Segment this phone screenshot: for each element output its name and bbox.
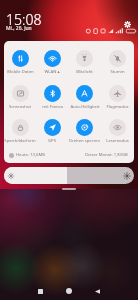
button[interactable]: WLAN ▴ <box>36 46 68 76</box>
staticText: GPS <box>48 138 56 144</box>
staticText: Dieser Monat: 1,83GB <box>85 152 128 158</box>
button[interactable]: Screenshot <box>4 81 36 111</box>
staticText: Stumm <box>110 69 125 75</box>
staticText: WLAN ▴ <box>44 69 60 75</box>
staticText: Drehen sperren <box>69 138 100 144</box>
staticText: 15:08 <box>6 10 42 29</box>
button[interactable]: Drehen sperren <box>68 115 101 145</box>
button[interactable]: Stumm <box>101 46 134 76</box>
staticText: Flugmodus <box>106 104 129 110</box>
staticText: Mi., 26. Jun <box>6 25 32 32</box>
button[interactable]: Heute: 13,6MB <box>9 152 85 158</box>
staticText: Lesemodus <box>106 138 129 144</box>
button[interactable]: Home <box>57 281 81 300</box>
button[interactable]: Recents <box>28 281 52 300</box>
button[interactable]: Lesemodus <box>101 115 134 145</box>
staticText: Blitzlicht <box>76 69 93 75</box>
button[interactable]: Auto-Helligkeit <box>68 81 101 111</box>
button[interactable]: Settings <box>123 20 132 29</box>
staticText: Auto-Helligkeit <box>70 104 100 110</box>
staticText: Mobile Daten <box>7 69 34 75</box>
button[interactable]: Back <box>85 281 109 300</box>
staticText: Sperrbildschirm <box>4 138 36 144</box>
staticText: mit Franca <box>42 104 63 110</box>
button[interactable]: mit Franca <box>36 81 68 111</box>
button[interactable]: Sperrbildschirm <box>4 115 36 145</box>
button[interactable] <box>4 167 134 184</box>
button[interactable]: Blitzlicht <box>68 46 101 76</box>
button[interactable]: Mobile Daten <box>4 46 36 76</box>
staticText: Screenshot <box>9 104 31 110</box>
staticText: Heute: 13,6MB <box>16 152 45 158</box>
button[interactable]: GPS <box>36 115 68 145</box>
button[interactable]: Flugmodus <box>101 81 134 111</box>
